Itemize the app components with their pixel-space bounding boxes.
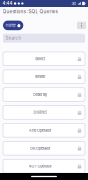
staticText: Home: [6, 23, 16, 28]
button[interactable]: Home: [3, 21, 23, 30]
staticText: 30: [71, 1, 76, 6]
staticText: Order By: [33, 92, 47, 97]
staticText: Select: [35, 56, 45, 61]
button[interactable]: Select: [3, 52, 85, 66]
button[interactable]: More options: [77, 22, 86, 29]
button[interactable]: Order By: [3, 88, 85, 101]
staticText: Search: [5, 35, 21, 41]
button[interactable]: OR Operator: [3, 141, 85, 155]
button[interactable]: NOT Operator: [3, 159, 85, 173]
staticText: NOT Operator: [28, 164, 51, 168]
button[interactable]: Distinct: [3, 106, 85, 119]
button[interactable]: where: [3, 70, 85, 83]
staticText: Distinct: [33, 110, 46, 115]
staticText: And Operator: [29, 128, 51, 133]
staticText: 4:44: [2, 1, 12, 6]
staticText: where: [35, 74, 45, 79]
button[interactable]: And Operator: [3, 123, 85, 137]
staticText: OR Operator: [30, 146, 50, 151]
staticText: Questions : SQL Queries: [2, 9, 57, 14]
